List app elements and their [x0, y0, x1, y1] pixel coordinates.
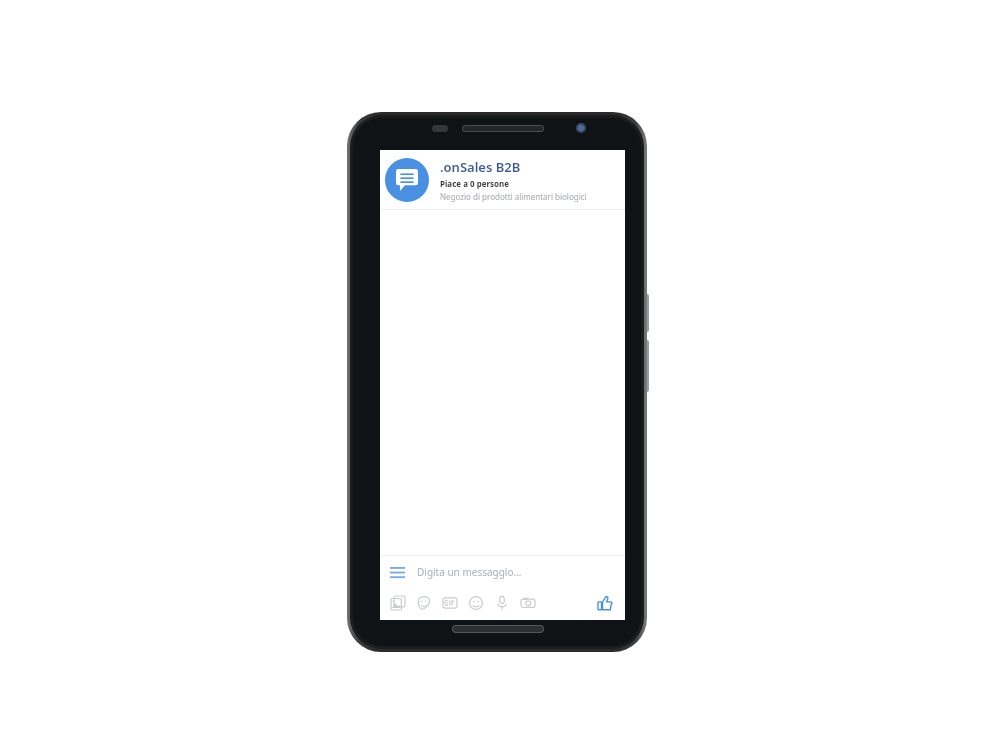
- button[interactable]: Stickers: [414, 593, 434, 613]
- button[interactable]: .onSales B2B: [380, 150, 625, 209]
- staticText: Negozio di prodotti alimentari biologici: [440, 191, 587, 202]
- staticText: .onSales B2B: [440, 158, 521, 176]
- button[interactable]: Menu: [388, 563, 406, 581]
- staticText: Digita un messaggio...: [417, 565, 522, 579]
- button[interactable]: Photos: [388, 593, 408, 613]
- button[interactable]: Menu: [380, 556, 625, 588]
- staticText: Piace a 0 persone: [440, 178, 510, 189]
- button[interactable]: Camera: [518, 593, 538, 613]
- button[interactable]: Voice: [492, 593, 512, 613]
- button[interactable]: Emoji: [466, 593, 486, 613]
- button[interactable]: Like: [595, 593, 615, 613]
- button[interactable]: GIF: [440, 593, 460, 613]
